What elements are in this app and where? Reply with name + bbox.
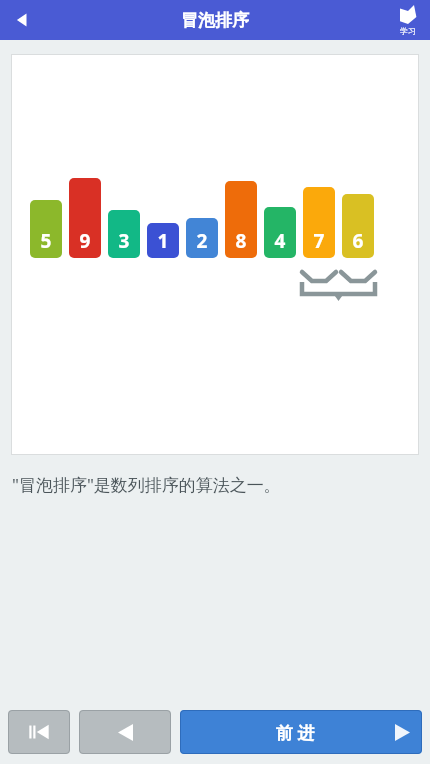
staticText: 前 进 [276,721,315,744]
staticText: 冒泡排序 [181,10,249,31]
staticText: 7 [303,228,335,254]
staticText: "冒泡排序"是数列排序的算法之一。 [12,473,281,496]
button[interactable]: 前 进 [180,710,422,754]
button[interactable]: 学习 [386,0,430,40]
staticText: 6 [342,228,374,254]
button[interactable]: Skip to start [8,710,70,754]
staticText: 学习 [400,26,416,36]
staticText: 9 [69,228,101,254]
button[interactable]: Previous step [79,710,171,754]
staticText: 2 [186,228,218,254]
staticText: 8 [225,228,257,254]
staticText: 3 [108,228,140,254]
button[interactable]: Back [0,0,44,40]
staticText: 1 [147,228,179,254]
staticText: 5 [30,228,62,254]
staticText: 4 [264,228,296,254]
